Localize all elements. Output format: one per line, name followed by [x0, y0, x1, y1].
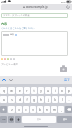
staticText: q [3, 89, 5, 93]
button[interactable]: y [38, 87, 44, 94]
staticText: , [61, 108, 62, 112]
button[interactable]: Colour [4, 58, 6, 60]
button[interactable]: Colour [13, 58, 15, 60]
button[interactable]: Shift [0, 106, 7, 113]
staticText: スマホ・タブレットの料金 [3, 14, 30, 17]
staticText: a [3, 98, 5, 102]
button[interactable]: 改行 [57, 116, 72, 123]
staticText: f [26, 98, 28, 102]
button[interactable]: v [30, 106, 36, 113]
button[interactable]: Reload [66, 5, 70, 9]
staticText: o [61, 89, 63, 93]
staticText: w [10, 89, 13, 93]
button[interactable]: a [0, 96, 7, 103]
staticText: - [68, 98, 70, 102]
button[interactable]: z [8, 106, 15, 113]
staticText: 60% [61, 1, 66, 4]
staticText: g [33, 98, 35, 102]
staticText: k [54, 98, 56, 102]
staticText: e [19, 89, 21, 93]
button[interactable]: c [23, 106, 29, 113]
button[interactable]: l [59, 96, 65, 103]
button[interactable]: q [0, 87, 7, 94]
button[interactable]: 内容 [1, 22, 7, 26]
staticText: r [26, 89, 28, 93]
button[interactable] [1, 31, 68, 56]
button[interactable]: , [58, 106, 64, 113]
button[interactable]: e [16, 87, 23, 94]
staticText: u [47, 89, 49, 93]
button[interactable]: u [45, 87, 51, 94]
staticText: x [18, 108, 20, 112]
staticText: z [11, 108, 13, 112]
staticText: v [32, 108, 34, 112]
button[interactable]: 完了 [64, 78, 70, 82]
staticText: t [33, 89, 35, 93]
button[interactable]: - [66, 96, 72, 103]
button[interactable]: t [31, 87, 37, 94]
staticText: s [11, 98, 13, 102]
button[interactable]: Colour [10, 58, 12, 60]
staticText: m [53, 108, 56, 112]
staticText: i [55, 89, 56, 93]
button[interactable]: b [37, 106, 43, 113]
button[interactable]: Previous field [1, 77, 7, 83]
staticText: c [25, 108, 27, 112]
button[interactable]: Insert image [60, 65, 67, 72]
button[interactable]: d [16, 96, 23, 103]
staticText: www.example.jp [26, 5, 48, 9]
button[interactable]: p [66, 87, 72, 94]
button[interactable]: Backspace [65, 106, 72, 113]
staticText: 空白 [37, 118, 41, 121]
button[interactable]: くわしくはこちらをご覧ください [1, 27, 35, 30]
button[interactable]: w [8, 87, 15, 94]
staticText: b [39, 108, 41, 112]
button[interactable]: m [51, 106, 57, 113]
button[interactable]: r [24, 87, 30, 94]
staticText: l [62, 98, 63, 102]
button[interactable]: n [44, 106, 50, 113]
button[interactable]: www.example.jp [23, 5, 48, 9]
button[interactable]: Next field [8, 77, 14, 83]
button[interactable]: Emoji [8, 116, 14, 123]
button[interactable]: j [45, 96, 51, 103]
button[interactable]: x [16, 106, 22, 113]
button[interactable]: g [31, 96, 37, 103]
staticText: p [68, 89, 70, 93]
button[interactable]: Space [22, 116, 56, 123]
button[interactable]: i [52, 87, 58, 94]
staticText: h [40, 98, 42, 102]
staticText: 改行 [63, 118, 67, 121]
button[interactable]: Colour [1, 58, 3, 60]
button[interactable]: o [59, 87, 65, 94]
button[interactable]: スマホ・タブレットの料金 [1, 13, 68, 18]
staticText: 123 [2, 118, 6, 121]
staticText: y [40, 89, 42, 93]
button[interactable]: Numbers [0, 116, 7, 123]
staticText: n [46, 108, 48, 112]
button[interactable]: k [52, 96, 58, 103]
button[interactable]: s [8, 96, 15, 103]
staticText: 完了 [64, 78, 70, 82]
button[interactable]: プレビュー表示 [1, 63, 18, 66]
button[interactable]: f [24, 96, 30, 103]
button[interactable]: h [38, 96, 44, 103]
staticText: d [19, 98, 21, 102]
staticText: 編集 [10, 33, 14, 36]
button[interactable]: Colour [7, 58, 9, 60]
staticText: j [48, 98, 49, 102]
button[interactable]: Dictation [15, 116, 21, 123]
